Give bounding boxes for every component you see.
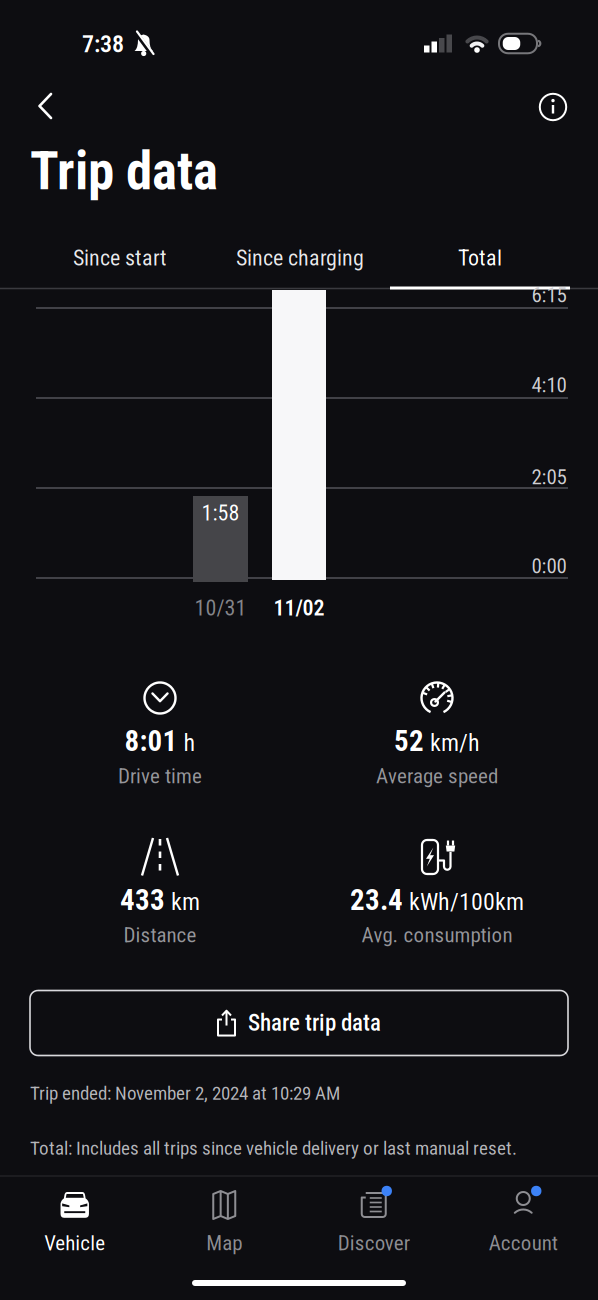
staticText: Total: Includes all trips since vehicle … bbox=[30, 1137, 517, 1159]
button[interactable]: Discover bbox=[300, 1177, 448, 1267]
staticText: Distance bbox=[123, 923, 196, 947]
button[interactable]: Map bbox=[150, 1177, 298, 1267]
button[interactable]: Total bbox=[390, 232, 570, 284]
staticText: Trip ended: November 2, 2024 at 10:29 AM bbox=[30, 1082, 340, 1104]
button[interactable]: Info bbox=[531, 85, 575, 129]
staticText: Total bbox=[458, 245, 502, 271]
staticText: Average speed bbox=[376, 764, 498, 788]
staticText: Avg. consumption bbox=[361, 923, 512, 947]
button[interactable]: Since charging bbox=[210, 232, 390, 284]
button[interactable]: Share trip data bbox=[30, 990, 568, 1055]
staticText: Map bbox=[206, 1231, 242, 1255]
staticText: 6:15 bbox=[531, 283, 566, 307]
staticText: Discover bbox=[338, 1231, 410, 1255]
button[interactable]: Account bbox=[449, 1177, 597, 1267]
staticText: 1:58 bbox=[201, 500, 239, 526]
staticText: 23.4 kWh/100km bbox=[350, 883, 524, 916]
staticText: Since charging bbox=[236, 245, 364, 271]
staticText: 8:01 h bbox=[124, 724, 195, 757]
staticText: 433 km bbox=[120, 883, 200, 916]
staticText: Vehicle bbox=[44, 1231, 105, 1255]
staticText: Share trip data bbox=[248, 1009, 381, 1036]
staticText: Trip data bbox=[30, 140, 218, 202]
button[interactable]: Back bbox=[23, 84, 67, 128]
staticText: Account bbox=[489, 1231, 558, 1255]
staticText: 4:10 bbox=[531, 373, 566, 397]
staticText: 10/31 bbox=[194, 595, 246, 621]
staticText: 52 km/h bbox=[394, 724, 480, 757]
staticText: 11/02 bbox=[273, 595, 324, 621]
staticText: 7:38 bbox=[82, 30, 124, 58]
staticText: 2:05 bbox=[531, 465, 566, 489]
button[interactable]: Since start bbox=[30, 232, 210, 284]
staticText: Drive time bbox=[118, 764, 202, 788]
button[interactable]: Vehicle bbox=[1, 1177, 149, 1267]
staticText: Since start bbox=[73, 245, 167, 271]
staticText: 0:00 bbox=[531, 554, 566, 578]
